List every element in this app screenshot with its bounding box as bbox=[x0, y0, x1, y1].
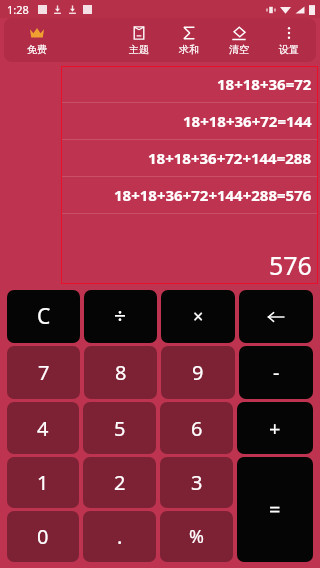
button[interactable]: 5 bbox=[83, 402, 156, 454]
button[interactable]: C bbox=[7, 290, 80, 343]
staticText: % bbox=[189, 524, 204, 549]
staticText: 清空 bbox=[229, 43, 249, 56]
staticText: 0 bbox=[37, 523, 49, 550]
button[interactable]: 求和 bbox=[164, 18, 214, 62]
button[interactable]: 9 bbox=[161, 346, 235, 399]
staticText: 8 bbox=[115, 359, 127, 386]
staticText: 设置 bbox=[279, 43, 299, 56]
staticText: ÷ bbox=[114, 302, 127, 331]
button[interactable]: Backspace bbox=[239, 290, 313, 343]
staticText: × bbox=[193, 304, 204, 329]
button[interactable]: 4 bbox=[7, 402, 79, 454]
button[interactable]: - bbox=[239, 346, 313, 399]
staticText: 5 bbox=[114, 415, 126, 442]
button[interactable]: + bbox=[237, 402, 313, 454]
staticText: 18+18+36+72+144=288 bbox=[148, 148, 312, 168]
button[interactable]: 3 bbox=[160, 457, 233, 508]
button[interactable]: 7 bbox=[7, 346, 80, 399]
button[interactable]: 6 bbox=[160, 402, 233, 454]
button[interactable]: 18+18+36+72+144+288=576 bbox=[61, 177, 318, 213]
staticText: 18+18+36=72 bbox=[217, 74, 312, 94]
button[interactable]: 0 bbox=[7, 511, 79, 562]
staticText: 2 bbox=[114, 469, 126, 496]
staticText: C bbox=[37, 302, 51, 331]
button[interactable]: = bbox=[237, 457, 313, 562]
staticText: - bbox=[273, 359, 280, 386]
staticText: 576 bbox=[269, 248, 312, 282]
button[interactable]: 1 bbox=[7, 457, 79, 508]
button[interactable]: . bbox=[83, 511, 156, 562]
staticText: 求和 bbox=[179, 43, 199, 56]
button[interactable]: 主题 bbox=[114, 18, 164, 62]
staticText: . bbox=[117, 523, 123, 550]
button[interactable]: 2 bbox=[83, 457, 156, 508]
staticText: + bbox=[269, 415, 281, 442]
button[interactable]: 18+18+36=72 bbox=[61, 66, 318, 102]
button[interactable]: 18+18+36+72=144 bbox=[61, 103, 318, 139]
button[interactable]: 设置 bbox=[264, 18, 314, 62]
staticText: 18+18+36+72+144+288=576 bbox=[114, 185, 312, 205]
staticText: 1 bbox=[37, 469, 49, 496]
button[interactable]: 清空 bbox=[214, 18, 264, 62]
staticText: 3 bbox=[191, 469, 203, 496]
button[interactable]: 18+18+36+72+144=288 bbox=[61, 140, 318, 176]
staticText: 18+18+36+72=144 bbox=[183, 111, 312, 131]
staticText: 主题 bbox=[129, 43, 149, 56]
button[interactable]: × bbox=[161, 290, 235, 343]
staticText: 1:28 bbox=[7, 2, 29, 17]
staticText: 7 bbox=[38, 359, 50, 386]
staticText: 9 bbox=[192, 359, 204, 386]
button[interactable]: % bbox=[160, 511, 233, 562]
button[interactable]: 8 bbox=[84, 346, 157, 399]
button[interactable]: ÷ bbox=[84, 290, 157, 343]
staticText: 6 bbox=[191, 415, 203, 442]
staticText: 4 bbox=[37, 415, 49, 442]
button[interactable]: 免费 bbox=[12, 18, 62, 62]
staticText: 免费 bbox=[27, 43, 47, 56]
staticText: = bbox=[269, 496, 281, 523]
